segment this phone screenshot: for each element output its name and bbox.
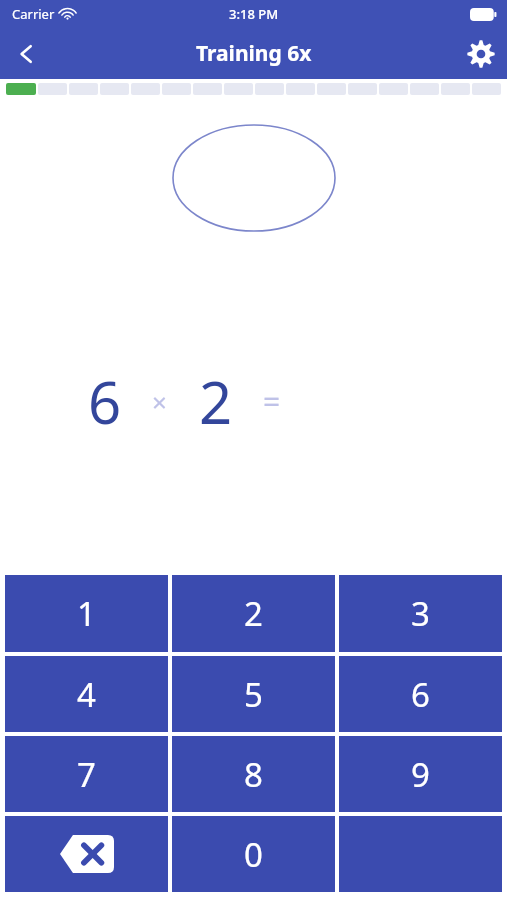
button[interactable]: 5	[172, 656, 335, 732]
button[interactable]: Backspace	[5, 816, 168, 892]
button[interactable]: Back	[0, 28, 52, 79]
staticText: =	[263, 381, 281, 422]
button[interactable]: 0	[172, 816, 335, 892]
staticText: 3	[411, 591, 430, 636]
button[interactable]: 7	[5, 736, 168, 812]
staticText: Carrier	[12, 5, 55, 23]
staticText: 1	[77, 591, 96, 636]
button[interactable]: 2	[172, 575, 335, 652]
staticText: Training 6x	[196, 39, 312, 68]
staticText: 9	[411, 752, 430, 797]
staticText: 6	[411, 672, 430, 717]
button[interactable]: 3	[339, 575, 502, 652]
staticText: 2	[244, 591, 263, 636]
staticText: 0	[244, 832, 263, 877]
button[interactable]: 9	[339, 736, 502, 812]
button[interactable]: Settings	[455, 28, 507, 79]
staticText: 4	[77, 672, 96, 717]
button[interactable]: 1	[5, 575, 168, 652]
staticText: 2	[199, 362, 233, 441]
button[interactable]: 8	[172, 736, 335, 812]
staticText: 7	[77, 752, 96, 797]
staticText: 5	[244, 672, 263, 717]
staticText: 6	[88, 362, 122, 441]
button[interactable]: 6	[339, 656, 502, 732]
staticText: 3:18 PM	[229, 5, 279, 23]
staticText: ×	[152, 384, 167, 419]
staticText: 8	[244, 752, 263, 797]
button[interactable]: 4	[5, 656, 168, 732]
